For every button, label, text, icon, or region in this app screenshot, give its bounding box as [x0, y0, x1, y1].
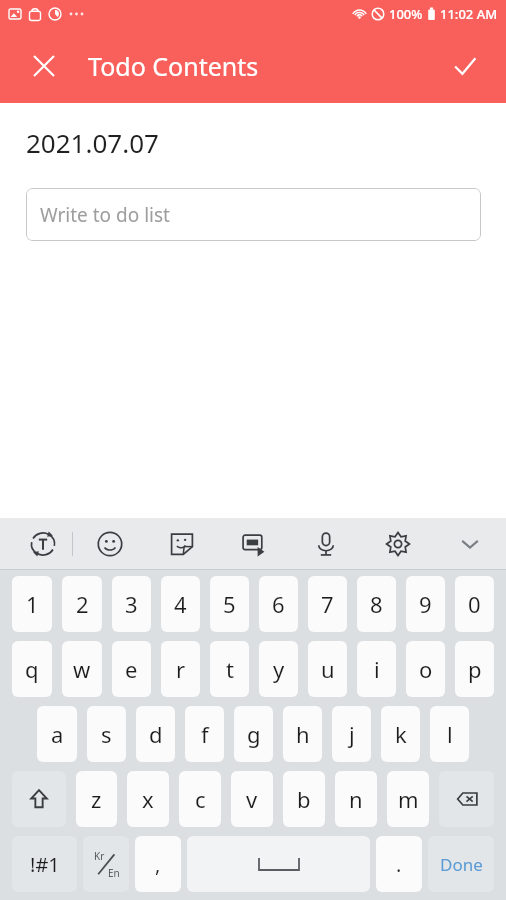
- button[interactable]: l: [430, 706, 469, 762]
- button[interactable]: d: [136, 706, 175, 762]
- button[interactable]: 7: [308, 576, 347, 632]
- staticText: f: [201, 719, 209, 749]
- staticText: c: [195, 784, 206, 814]
- button[interactable]: 9: [406, 576, 445, 632]
- button[interactable]: j: [332, 706, 371, 762]
- button[interactable]: Shift: [12, 771, 66, 827]
- button[interactable]: s: [87, 706, 126, 762]
- staticText: d: [149, 719, 163, 749]
- staticText: 8: [370, 589, 383, 619]
- staticText: 7: [321, 589, 334, 619]
- button[interactable]: Emoji: [88, 522, 132, 566]
- button[interactable]: t: [210, 641, 249, 697]
- staticText: i: [374, 654, 380, 684]
- staticText: 100%: [389, 5, 423, 23]
- staticText: v: [246, 784, 258, 814]
- staticText: ,: [155, 851, 161, 878]
- staticText: g: [247, 719, 261, 749]
- button[interactable]: Settings: [376, 522, 420, 566]
- staticText: a: [51, 719, 64, 749]
- button[interactable]: f: [185, 706, 224, 762]
- button[interactable]: Done: [428, 836, 494, 892]
- button[interactable]: c: [179, 771, 221, 827]
- button[interactable]: .: [376, 836, 422, 892]
- button[interactable]: Translate: [14, 522, 72, 566]
- button[interactable]: 4: [161, 576, 200, 632]
- button[interactable]: Voice input: [304, 522, 348, 566]
- staticText: !#1: [30, 851, 60, 878]
- staticText: y: [273, 654, 285, 684]
- staticText: Todo Contents: [88, 49, 259, 83]
- button[interactable]: p: [455, 641, 494, 697]
- staticText: b: [297, 784, 311, 814]
- button[interactable]: o: [406, 641, 445, 697]
- staticText: r: [176, 654, 186, 684]
- staticText: u: [321, 654, 335, 684]
- button[interactable]: Hide keyboard: [448, 522, 492, 566]
- button[interactable]: Backspace: [439, 771, 494, 827]
- button[interactable]: y: [259, 641, 298, 697]
- staticText: t: [226, 654, 234, 684]
- staticText: 3: [125, 589, 138, 619]
- staticText: p: [468, 654, 482, 684]
- staticText: m: [398, 784, 419, 814]
- staticText: 9: [419, 589, 432, 619]
- staticText: l: [447, 719, 453, 749]
- staticText: w: [73, 654, 91, 684]
- staticText: En: [108, 866, 120, 880]
- staticText: 2: [76, 589, 89, 619]
- button[interactable]: x: [127, 771, 169, 827]
- button[interactable]: e: [112, 641, 151, 697]
- button[interactable]: Space: [187, 836, 370, 892]
- staticText: 4: [174, 589, 187, 619]
- button[interactable]: 2: [62, 576, 102, 632]
- staticText: 11:02 AM: [440, 5, 498, 23]
- button[interactable]: Close: [22, 44, 66, 88]
- button[interactable]: v: [231, 771, 273, 827]
- button[interactable]: ,: [135, 836, 181, 892]
- staticText: j: [349, 719, 355, 749]
- staticText: n: [349, 784, 363, 814]
- button[interactable]: r: [161, 641, 200, 697]
- button[interactable]: !#1: [12, 836, 77, 892]
- staticText: 5: [223, 589, 236, 619]
- button[interactable]: z: [76, 771, 117, 827]
- staticText: o: [419, 654, 433, 684]
- staticText: z: [91, 784, 102, 814]
- staticText: e: [125, 654, 138, 684]
- staticText: Kr: [94, 849, 105, 863]
- button[interactable]: a: [37, 706, 77, 762]
- button[interactable]: Stickers: [160, 522, 204, 566]
- button[interactable]: Write to do list: [26, 188, 481, 241]
- button[interactable]: h: [283, 706, 322, 762]
- staticText: q: [25, 654, 39, 684]
- button[interactable]: i: [357, 641, 396, 697]
- button[interactable]: 0: [455, 576, 494, 632]
- staticText: 1: [26, 589, 39, 619]
- button[interactable]: 5: [210, 576, 249, 632]
- staticText: 0: [468, 589, 481, 619]
- button[interactable]: 8: [357, 576, 396, 632]
- button[interactable]: m: [387, 771, 429, 827]
- button[interactable]: 3: [112, 576, 151, 632]
- button[interactable]: 1: [12, 576, 52, 632]
- staticText: h: [296, 719, 310, 749]
- button[interactable]: Save: [442, 43, 488, 89]
- button[interactable]: Language: [83, 836, 129, 892]
- staticText: .: [396, 851, 402, 878]
- staticText: s: [101, 719, 112, 749]
- staticText: 6: [272, 589, 285, 619]
- button[interactable]: w: [62, 641, 102, 697]
- button[interactable]: b: [283, 771, 325, 827]
- staticText: k: [395, 719, 407, 749]
- button[interactable]: GIF: [232, 522, 276, 566]
- button[interactable]: n: [335, 771, 377, 827]
- button[interactable]: u: [308, 641, 347, 697]
- staticText: Write to do list: [40, 202, 170, 228]
- button[interactable]: q: [12, 641, 52, 697]
- staticText: 2021.07.07: [26, 125, 159, 160]
- button[interactable]: k: [381, 706, 420, 762]
- button[interactable]: 6: [259, 576, 298, 632]
- button[interactable]: g: [234, 706, 273, 762]
- staticText: x: [142, 784, 154, 814]
